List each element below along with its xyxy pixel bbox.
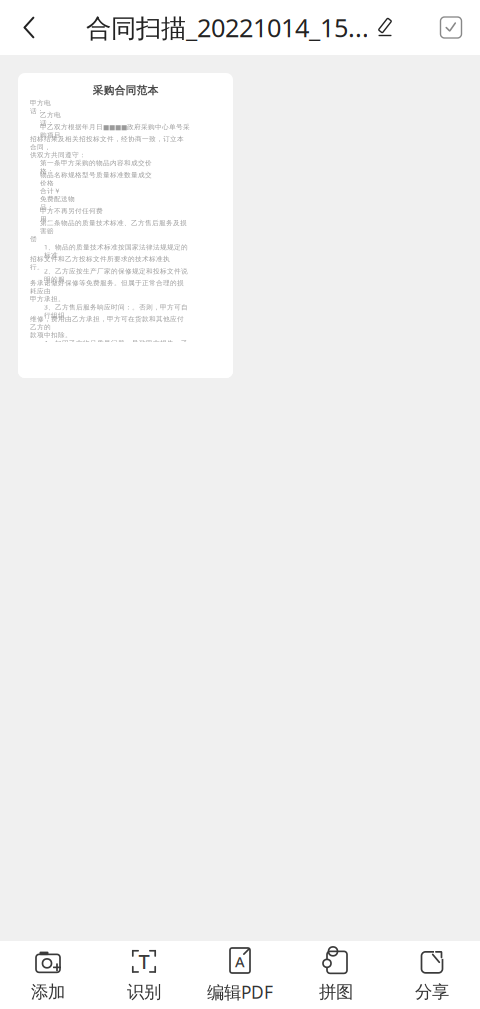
staticText: 招标文件和乙方投标文件所要求的技术标准执行。 [30,255,170,271]
staticText: A [235,952,245,971]
button[interactable]: 添加 [0,941,96,1009]
staticText: 分享 [415,981,449,1003]
staticText: 偿 [30,235,37,243]
staticText: 拼图 [319,981,353,1003]
staticText: 招标结果及相关招投标文件，经协商一致，订立本合同， [30,135,184,151]
staticText: 添加 [31,981,65,1003]
button[interactable]: T [96,941,192,1009]
staticText: 维修，费用由乙方承担，甲方可在货款和其他应付乙方的 [30,315,184,331]
staticText: 乙方电话： [40,111,61,127]
staticText: 采购合同范本 [92,84,158,97]
staticText: 款项中扣除。 [30,331,72,339]
button[interactable]: A [192,941,288,1009]
staticText: 编辑PDF [207,980,273,1003]
staticText: 第一条甲方采购的物品内容和成交价格： [40,159,152,175]
staticText: 4、如因乙方物品质量问题，导致甲方损失，乙方应予 [44,339,188,356]
button[interactable]: 全选 [422,0,480,55]
staticText: 合计￥ [40,187,61,195]
button[interactable]: 返回 [0,0,58,55]
staticText: 物品名称规格型号质量标准数量成交价格 [40,171,152,187]
button[interactable]: 采购合同范本 [18,73,233,378]
staticText: 3、乙方售后服务响应时间：。否则，甲方可自行组织 [44,303,188,320]
staticText: 第二条物品的质量技术标准、乙方售后服务及损害赔 [40,219,187,235]
staticText: 甲方不再另付任何费用。 [40,207,103,223]
staticText: 识别 [127,981,161,1003]
button[interactable]: 拼图 [288,941,384,1009]
staticText: 2、乙方应按生产厂家的保修规定和投标文件说明的服 [44,267,188,284]
staticText: 务承诺做好保修等免费服务。但属于正常合理的损耗应由 [30,279,184,295]
staticText: 甲方承担。 [30,295,65,303]
button[interactable]: 合同扫描_20221014_15... [82,0,398,55]
staticText: 甲乙双方根据年月日■■■■政府采购中心单号采购项目 [40,123,190,139]
staticText: 合同扫描_20221014_15... [86,11,369,44]
staticText: 供双方共同遵守： [30,151,86,159]
button[interactable]: 分享 [384,941,480,1009]
staticText: 免费配送物品： [40,195,75,211]
staticText: T [138,948,149,975]
staticText: 甲方电话： [30,99,51,115]
staticText: 1、物品的质量技术标准按国家法律法规规定的标准、 [44,243,188,260]
